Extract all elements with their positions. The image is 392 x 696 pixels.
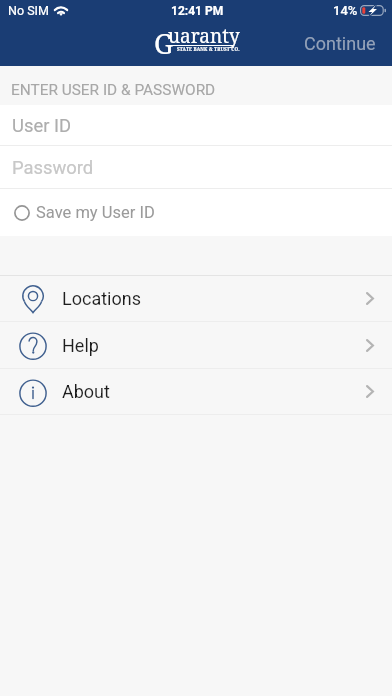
button[interactable]: Continue (288, 24, 392, 63)
staticText: 12:41 PM (171, 4, 224, 18)
staticText: ENTER USER ID & PASSWORD (11, 81, 216, 99)
staticText: Password (12, 157, 94, 179)
button[interactable]: Locations (0, 276, 392, 321)
staticText: User ID (12, 115, 72, 137)
other: Wi-Fi signal (54, 5, 68, 16)
button[interactable]: Password (0, 146, 392, 188)
button[interactable]: Help (0, 322, 392, 368)
staticText: Locations (62, 288, 141, 309)
staticText: Continue (304, 33, 376, 54)
button[interactable]: About (0, 369, 392, 414)
staticText: 14% (333, 3, 358, 18)
staticText: About (62, 381, 110, 402)
staticText: G (154, 25, 174, 62)
staticText: STATE BANK & TRUST CO. (177, 46, 240, 52)
other: Battery 14 percent charging (360, 5, 386, 16)
button[interactable]: User ID (0, 105, 392, 145)
button[interactable]: Save my User ID (0, 189, 392, 236)
staticText: uaranty (168, 23, 240, 49)
staticText: Help (62, 335, 99, 356)
staticText: Save my User ID (36, 203, 155, 222)
staticText: No SIM (8, 3, 49, 18)
